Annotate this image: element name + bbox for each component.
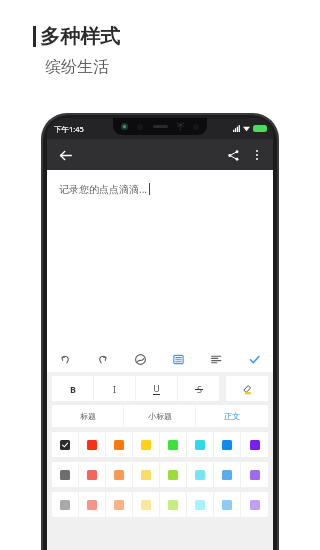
button[interactable]: Colour 2 bbox=[79, 462, 105, 487]
button[interactable]: 小标题 bbox=[124, 405, 195, 427]
staticText: 缤纷生活 bbox=[45, 57, 109, 77]
button[interactable]: Colour 7 bbox=[214, 432, 240, 457]
button[interactable]: Colour 5 bbox=[160, 492, 186, 517]
button[interactable]: Colour 6 bbox=[187, 492, 213, 517]
button[interactable]: Colour 3 bbox=[106, 492, 132, 517]
button[interactable]: Colour 8 bbox=[241, 492, 268, 517]
staticText: 标题 bbox=[80, 411, 96, 421]
button[interactable]: B bbox=[52, 376, 93, 401]
button[interactable]: Colour 8 bbox=[241, 462, 268, 487]
button[interactable]: Colour 1 bbox=[52, 492, 78, 517]
staticText: 下午1:45 bbox=[54, 124, 84, 134]
button[interactable]: Highlight bbox=[226, 376, 268, 401]
button[interactable]: Colour 8 bbox=[241, 432, 268, 457]
button[interactable]: Colour 1 bbox=[52, 462, 78, 487]
button[interactable]: Undo bbox=[47, 346, 84, 372]
button[interactable]: Colour 5 bbox=[160, 432, 186, 457]
button[interactable]: I bbox=[94, 376, 135, 401]
button[interactable]: Colour 6 bbox=[187, 462, 213, 487]
button[interactable]: 标题 bbox=[52, 405, 123, 427]
button[interactable]: Colour 4 bbox=[133, 432, 159, 457]
button[interactable]: Colour 2 bbox=[79, 432, 105, 457]
button[interactable]: Colour 4 bbox=[133, 462, 159, 487]
button[interactable]: Share bbox=[221, 143, 245, 167]
button[interactable]: Colour 7 bbox=[214, 492, 240, 517]
button[interactable]: Text style bbox=[159, 346, 197, 372]
staticText: 多种样式 bbox=[40, 24, 120, 49]
button[interactable]: Colour 2 bbox=[79, 492, 105, 517]
button[interactable]: S bbox=[178, 376, 219, 401]
button[interactable]: Colour 3 bbox=[106, 432, 132, 457]
staticText: 记录您的点点滴滴... bbox=[59, 182, 148, 196]
staticText: 小标题 bbox=[148, 411, 172, 421]
button[interactable]: More options bbox=[245, 143, 269, 167]
button[interactable]: Back bbox=[53, 143, 77, 167]
button[interactable]: Redo bbox=[84, 346, 121, 372]
button[interactable]: Colour 6 bbox=[187, 432, 213, 457]
button[interactable]: Colour 3 bbox=[106, 462, 132, 487]
staticText: U bbox=[153, 382, 160, 394]
button[interactable]: U bbox=[136, 376, 177, 401]
button[interactable]: Alignment bbox=[197, 346, 235, 372]
button[interactable]: Insert image bbox=[121, 346, 159, 372]
staticText: B bbox=[70, 383, 76, 395]
button[interactable]: Done bbox=[235, 346, 273, 372]
staticText: S bbox=[197, 383, 202, 395]
button[interactable]: Colour 5 bbox=[160, 462, 186, 487]
button[interactable]: Colour 7 bbox=[214, 462, 240, 487]
staticText: 正文 bbox=[224, 411, 240, 421]
staticText: I bbox=[113, 383, 117, 395]
button[interactable]: Colour 4 bbox=[133, 492, 159, 517]
button[interactable]: 正文 bbox=[196, 405, 268, 427]
button[interactable]: Colour 1 bbox=[52, 432, 78, 457]
